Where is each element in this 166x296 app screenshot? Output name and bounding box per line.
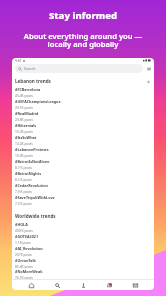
button[interactable]: Search: [50, 280, 64, 290]
button[interactable]: Trends settings: [146, 79, 151, 84]
button[interactable]: #CedarRevolution: [12, 182, 154, 194]
button[interactable]: #Hibernials: [12, 122, 154, 134]
staticText: #BeirutIsNotAlone: [15, 159, 50, 164]
staticText: #CedarRevolution: [15, 183, 48, 188]
staticText: #Hibernials: [15, 123, 37, 128]
staticText: #UEFAChampionsLeague: [15, 99, 61, 104]
staticText: About everything around you — locally an…: [0, 31, 166, 50]
staticText: #AI_Revolution: [15, 246, 43, 251]
staticText: 9:41: [15, 59, 22, 63]
staticText: 8.5 K posts: [15, 177, 32, 181]
staticText: 10.9K posts: [15, 153, 33, 157]
staticText: Worldwide trends: [15, 213, 56, 219]
staticText: 257K posts: [15, 252, 32, 256]
staticText: 85.4K posts: [15, 264, 33, 268]
button[interactable]: #UEFAChampionsLeague: [12, 98, 154, 110]
button[interactable]: Grok: [76, 280, 90, 290]
button[interactable]: #HOLA: [12, 221, 154, 233]
staticText: 15.2K posts: [15, 129, 33, 133]
staticText: #HOLA: [15, 222, 28, 227]
button[interactable]: Home: [24, 280, 38, 290]
staticText: #RealMadrid: [15, 111, 39, 116]
button[interactable]: #BeirutIsNotAlone: [12, 158, 154, 170]
staticText: Lebanon trends: [15, 78, 51, 84]
button[interactable]: #GOTEA2021: [12, 233, 154, 245]
staticText: #NoMoreWeak: [15, 269, 43, 274]
button[interactable]: Messages: [128, 280, 142, 290]
button[interactable]: #BeirutNights: [12, 170, 154, 182]
staticText: 45.4K posts: [15, 93, 33, 97]
staticText: #BeirutNights: [15, 171, 42, 176]
button[interactable]: #SaveTripoliWithLove: [12, 194, 154, 206]
staticText: #ItsSoWhat: [15, 135, 37, 140]
staticText: 7.9 K posts: [15, 189, 32, 193]
staticText: #GOTEA2021: [15, 234, 39, 239]
staticText: 29.1K posts: [15, 105, 33, 109]
staticText: #UnionTalk: [15, 258, 36, 263]
staticText: Search: [24, 66, 36, 71]
button[interactable]: #LebanonProtests: [12, 146, 154, 158]
staticText: 8.7 K posts: [15, 165, 32, 169]
staticText: 20.8K posts: [15, 117, 33, 121]
staticText: Stay informed: [0, 9, 166, 22]
button[interactable]: #ItsSoWhat: [12, 134, 154, 146]
staticText: 450 K posts: [15, 228, 33, 232]
staticText: 1.18 posts: [15, 240, 31, 244]
button[interactable]: Settings: [145, 65, 152, 72]
button[interactable]: #RealMadrid: [12, 110, 154, 122]
staticText: 7.3 K posts: [15, 201, 32, 205]
button[interactable]: #NoMoreWeak: [12, 269, 154, 279]
staticText: #LebanonProtests: [15, 147, 49, 152]
staticText: 13.2K posts: [15, 141, 33, 145]
button[interactable]: #UnionTalk: [12, 257, 154, 269]
button[interactable]: Search: [15, 64, 143, 73]
staticText: #SaveTripoliWithLove: [15, 195, 55, 200]
button[interactable]: #FCBarcelona: [12, 86, 154, 98]
button[interactable]: #AI_Revolution: [12, 245, 154, 257]
staticText: 76.1K posts: [15, 275, 33, 279]
staticText: #FCBarcelona: [15, 87, 41, 92]
button[interactable]: Notifications: [102, 280, 116, 290]
